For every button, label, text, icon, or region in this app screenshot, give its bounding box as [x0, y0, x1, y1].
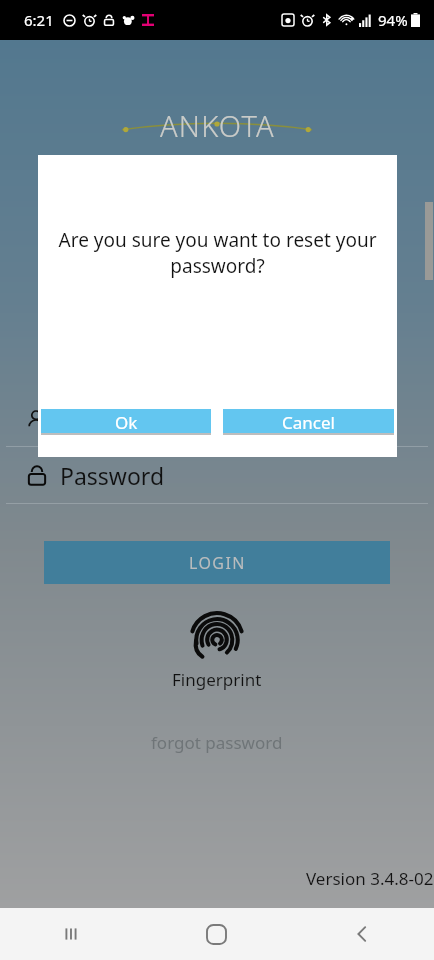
staticText: sample.user: [58, 407, 174, 434]
staticText: Are you sure you want to reset your pass…: [56, 227, 379, 279]
staticText: ANKOTA: [160, 106, 275, 145]
button[interactable]: forgot password: [0, 727, 434, 758]
button[interactable]: Cancel: [223, 409, 394, 435]
staticText: LOGIN: [189, 552, 246, 574]
staticText: 6:21: [24, 10, 54, 30]
button[interactable]: Ok: [41, 409, 211, 435]
staticText: Version 3.4.8-02: [306, 867, 434, 890]
staticText: Fingerprint: [172, 668, 262, 691]
staticText: forgot password: [151, 731, 283, 754]
staticText: Cancel: [282, 411, 335, 434]
button[interactable]: sample.user: [0, 394, 434, 446]
staticText: Ok: [115, 411, 138, 434]
staticText: Password: [60, 460, 165, 491]
button[interactable]: Fingerprint: [0, 604, 434, 695]
button[interactable]: Recents: [0, 908, 144, 960]
staticText: 94%: [378, 10, 408, 30]
button[interactable]: Back: [289, 908, 434, 960]
button[interactable]: LOGIN: [44, 541, 390, 584]
button[interactable]: Password: [0, 447, 434, 503]
button[interactable]: Home: [144, 908, 289, 960]
